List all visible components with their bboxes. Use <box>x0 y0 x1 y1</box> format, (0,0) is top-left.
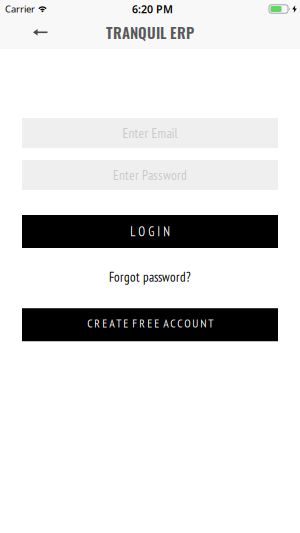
staticText: C R E A T E F R E E A C C O U N T <box>87 316 213 331</box>
staticText: Enter Password <box>113 166 187 184</box>
button[interactable]: Enter Email <box>22 118 278 148</box>
button[interactable]: C R E A T E F R E E A C C O U N T <box>22 308 278 341</box>
staticText: 6:20 PM <box>132 2 173 16</box>
staticText: TRANQUIL ERP <box>106 21 194 43</box>
button[interactable]: Enter Password <box>22 160 278 190</box>
staticText: Enter Email <box>122 124 177 142</box>
staticText: Carrier <box>5 3 35 15</box>
staticText: L O G I N <box>130 223 170 240</box>
button[interactable]: Back <box>0 18 48 46</box>
button[interactable]: Forgot password? <box>109 268 191 285</box>
staticText: Forgot password? <box>109 268 191 285</box>
button[interactable]: L O G I N <box>22 215 278 248</box>
